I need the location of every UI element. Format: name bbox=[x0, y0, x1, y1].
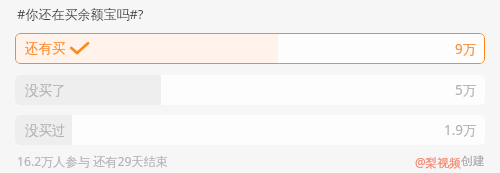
button[interactable]: @梨视频 bbox=[415, 154, 485, 170]
other: Your vote bbox=[70, 42, 89, 55]
staticText: 5万 bbox=[455, 81, 477, 99]
staticText: 没买过 bbox=[25, 122, 66, 139]
button[interactable]: 没买过 bbox=[15, 115, 485, 145]
staticText: 9万 bbox=[455, 40, 477, 58]
button[interactable]: 16.2万人参与 还有29天结束 bbox=[17, 153, 168, 170]
button[interactable]: 还有买 bbox=[15, 33, 485, 64]
staticText: 创建 bbox=[461, 154, 485, 169]
staticText: 没买了 bbox=[25, 82, 66, 99]
button[interactable]: #你还在买余额宝吗#? bbox=[17, 5, 144, 23]
staticText: 还有买 bbox=[25, 40, 66, 57]
staticText: @梨视频 bbox=[415, 154, 461, 170]
staticText: 1.9万 bbox=[444, 121, 477, 139]
button[interactable]: 没买了 bbox=[15, 75, 485, 105]
